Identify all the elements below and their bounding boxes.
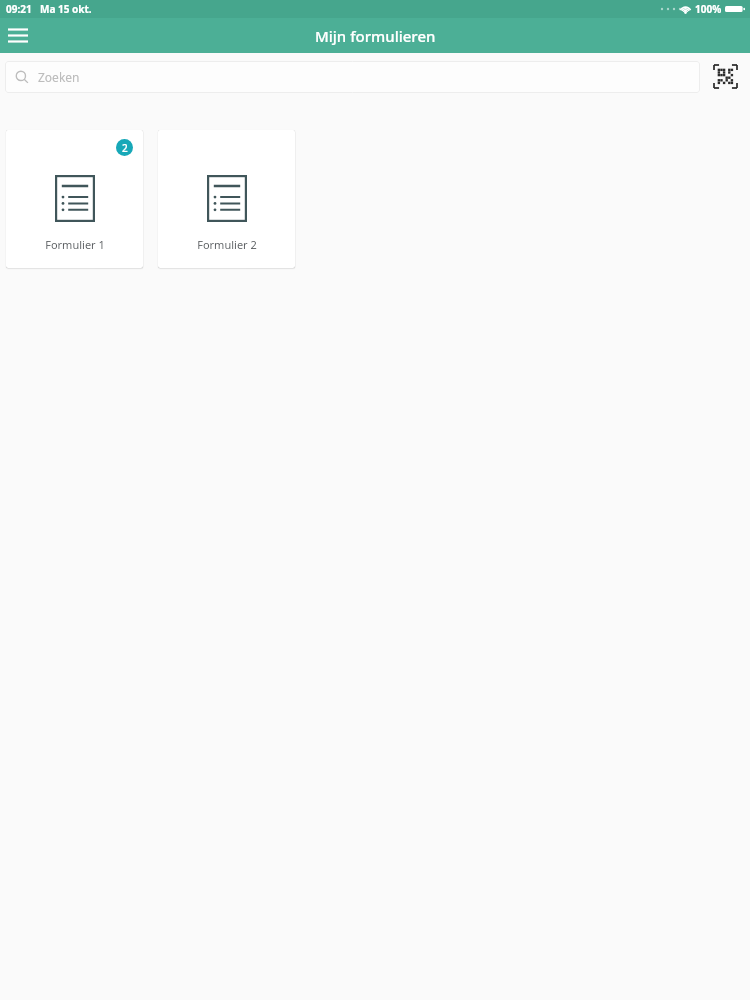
staticText: Mijn formulieren [315, 26, 436, 46]
staticText: 09:21 [6, 2, 32, 16]
staticText: Formulier 2 [197, 237, 257, 252]
button[interactable]: Menu [0, 18, 36, 53]
button[interactable]: Formulier 2 [158, 130, 295, 268]
staticText: 2 [122, 141, 128, 155]
button[interactable]: Zoeken [5, 61, 700, 93]
staticText: Zoeken [38, 69, 80, 85]
button[interactable]: Scan QR code [700, 53, 750, 100]
button[interactable]: Formulier 1 [6, 130, 143, 268]
staticText: 100% [695, 2, 722, 16]
staticText: Ma 15 okt. [40, 2, 92, 16]
staticText: Formulier 1 [45, 237, 105, 252]
